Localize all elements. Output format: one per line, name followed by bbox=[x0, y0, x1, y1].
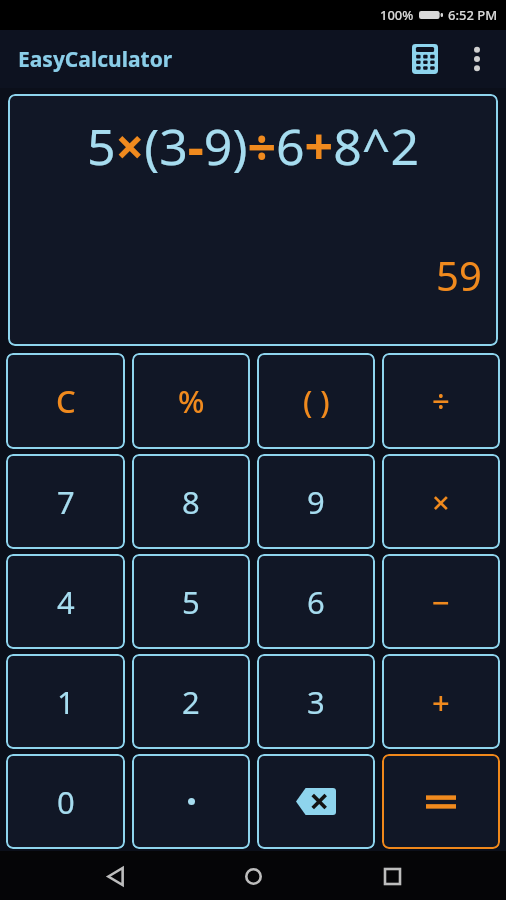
button[interactable]: 2 bbox=[132, 654, 250, 749]
button[interactable]: C bbox=[6, 353, 125, 449]
staticText: 1 bbox=[57, 681, 75, 723]
staticText: 8 bbox=[182, 481, 200, 523]
button[interactable]: Backspace bbox=[257, 754, 375, 849]
button[interactable]: 9 bbox=[257, 454, 375, 549]
button[interactable]: More options bbox=[456, 38, 498, 80]
button[interactable] bbox=[382, 754, 500, 849]
staticText: 5×(3-9)÷6+8^2 bbox=[87, 112, 419, 180]
staticText: ( ) bbox=[303, 381, 330, 422]
button[interactable]: Home bbox=[229, 852, 277, 900]
staticText: 9 bbox=[307, 481, 325, 523]
button[interactable]: + bbox=[382, 654, 500, 749]
button[interactable]: × bbox=[382, 454, 500, 549]
button[interactable]: ( ) bbox=[257, 353, 375, 449]
staticText: 6:52 PM bbox=[448, 6, 498, 24]
staticText: 7 bbox=[57, 481, 75, 523]
button[interactable]: 5 bbox=[132, 554, 250, 649]
button[interactable]: ÷ bbox=[382, 353, 500, 449]
button[interactable]: 7 bbox=[6, 454, 125, 549]
button[interactable]: Back bbox=[91, 852, 139, 900]
staticText: EasyCalculator bbox=[18, 45, 173, 74]
staticText: + bbox=[432, 681, 450, 723]
button[interactable]: 1 bbox=[6, 654, 125, 749]
button[interactable]: − bbox=[382, 554, 500, 649]
staticText: 0 bbox=[57, 781, 75, 823]
button[interactable]: 0 bbox=[6, 754, 125, 849]
button[interactable]: Recent apps bbox=[368, 852, 416, 900]
button[interactable]: 3 bbox=[257, 654, 375, 749]
staticText: 2 bbox=[182, 681, 200, 723]
button[interactable]: Calculator bbox=[404, 38, 446, 80]
button[interactable] bbox=[132, 754, 250, 849]
staticText: 5 bbox=[182, 581, 200, 623]
staticText: C bbox=[56, 380, 76, 422]
button[interactable]: 8 bbox=[132, 454, 250, 549]
staticText: % bbox=[178, 380, 205, 422]
staticText: 59 bbox=[436, 248, 482, 302]
button[interactable]: % bbox=[132, 353, 250, 449]
button[interactable]: 6 bbox=[257, 554, 375, 649]
staticText: 4 bbox=[57, 581, 75, 623]
button[interactable]: 5×(3-9)÷6+8^2 bbox=[8, 94, 498, 346]
staticText: × bbox=[432, 481, 450, 523]
staticText: − bbox=[432, 581, 450, 623]
staticText: 6 bbox=[307, 581, 325, 623]
staticText: ÷ bbox=[432, 380, 450, 422]
staticText: 100% bbox=[380, 6, 414, 24]
button[interactable]: 4 bbox=[6, 554, 125, 649]
staticText: 3 bbox=[307, 681, 325, 723]
